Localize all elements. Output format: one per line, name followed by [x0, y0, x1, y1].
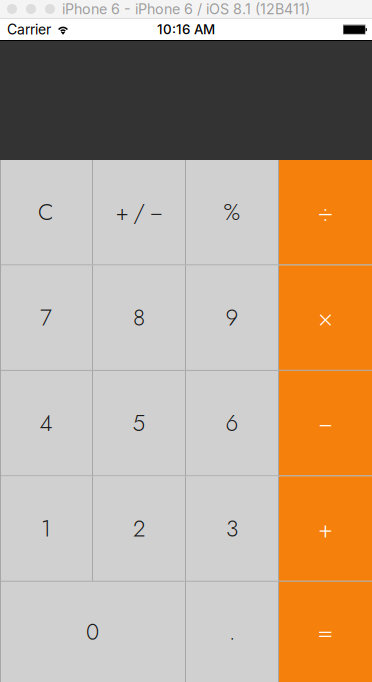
- staticText: 7: [40, 301, 52, 334]
- staticText: =: [317, 614, 333, 650]
- staticText: 9: [225, 301, 238, 334]
- staticText: +: [318, 510, 333, 547]
- button[interactable]: 7: [0, 265, 92, 370]
- staticText: 6: [225, 407, 238, 439]
- button[interactable]: 5: [93, 371, 185, 475]
- button[interactable]: 3: [186, 476, 278, 581]
- button[interactable]: 4: [0, 371, 92, 475]
- button[interactable]: 8: [93, 265, 185, 370]
- staticText: −: [318, 405, 333, 441]
- button[interactable]: C: [0, 160, 92, 264]
- staticText: iPhone 6 - iPhone 6 / iOS 8.1 (12B411): [62, 0, 310, 18]
- staticText: 8: [133, 301, 145, 334]
- staticText: 1: [41, 512, 51, 545]
- button[interactable]: + / −: [93, 160, 185, 264]
- button[interactable]: 9: [186, 265, 278, 370]
- staticText: 3: [226, 512, 238, 545]
- staticText: 0: [86, 615, 99, 648]
- staticText: %: [223, 196, 240, 229]
- staticText: Carrier: [7, 21, 51, 38]
- staticText: 2: [133, 512, 145, 545]
- staticText: .: [229, 615, 235, 648]
- button[interactable]: −: [279, 371, 372, 475]
- staticText: C: [38, 196, 54, 229]
- staticText: ×: [318, 299, 333, 336]
- button[interactable]: 1: [0, 476, 92, 581]
- button[interactable]: ×: [279, 265, 372, 370]
- staticText: 4: [39, 407, 52, 439]
- button[interactable]: +: [279, 476, 372, 581]
- staticText: 10:16 AM: [157, 21, 215, 37]
- button[interactable]: 2: [93, 476, 185, 581]
- staticText: + / −: [115, 196, 162, 229]
- staticText: 5: [132, 407, 145, 439]
- button[interactable]: %: [186, 160, 278, 264]
- button[interactable]: ÷: [279, 160, 372, 264]
- staticText: ÷: [317, 194, 333, 230]
- button[interactable]: 6: [186, 371, 278, 475]
- button[interactable]: 0: [0, 582, 185, 682]
- button[interactable]: =: [279, 582, 372, 682]
